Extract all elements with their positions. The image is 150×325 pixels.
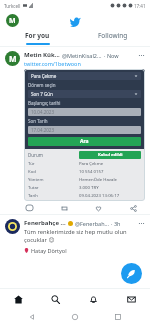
staticText: · Now (104, 52, 119, 59)
button[interactable]: Compose Tweet (121, 263, 142, 284)
staticText: For you (25, 31, 50, 40)
staticText: Başlangıç tarihi (28, 100, 61, 106)
staticText: Metin Kük... (24, 51, 60, 59)
button[interactable]: Back (27, 312, 37, 322)
staticText: M (9, 53, 17, 64)
staticText: Son Tarih (28, 118, 48, 124)
button[interactable]: 10.04.2023 (31, 108, 138, 116)
staticText: 10 554 0157 (79, 168, 141, 174)
button[interactable]: Recents (113, 312, 123, 322)
staticText: 10.04.2023 (31, 109, 55, 115)
staticText: 3.000 TRY (79, 184, 141, 190)
staticText: twitter.com/1betwoon (24, 60, 81, 67)
staticText: Tür (28, 160, 79, 166)
staticText: Hatay Dörtyol (31, 247, 67, 254)
staticText: 09.04.2023 13:06:17 (79, 192, 141, 198)
staticText: Yöntem (28, 176, 79, 182)
staticText: Para Çekme (79, 160, 141, 166)
staticText: Kabul edildi (98, 152, 123, 158)
button[interactable]: Metin avatar (5, 51, 20, 66)
button[interactable]: Like (93, 203, 104, 214)
staticText: M (9, 16, 16, 26)
staticText: Tarih (28, 192, 79, 198)
button[interactable]: Messages (112, 289, 150, 309)
button[interactable]: Home (0, 289, 37, 309)
button[interactable]: For you (0, 30, 75, 46)
staticText: Ara (80, 138, 89, 145)
staticText: Para Çekme (31, 73, 57, 79)
button[interactable]: Notifications (74, 289, 112, 309)
button[interactable]: Son 7 Gün (31, 90, 138, 98)
button[interactable]: More (137, 51, 145, 59)
staticText: Tutar (28, 184, 79, 190)
button[interactable]: Twitter (68, 14, 82, 28)
staticText: 17:41 (134, 3, 146, 9)
staticText: Durum (28, 152, 79, 158)
staticText: 17.04.2023 (31, 127, 55, 133)
button[interactable]: Para Çekme (31, 72, 138, 80)
staticText: Dönem seçin (28, 82, 56, 88)
staticText: Turkcell (4, 3, 21, 9)
button[interactable]: Para Çekme (24, 69, 145, 201)
button[interactable]: 17.04.2023 (31, 126, 138, 134)
button[interactable]: Home (70, 312, 80, 322)
staticText: Tüm renklerimizde siz hep mutlu olun çoc… (24, 228, 127, 244)
button[interactable]: Ara (28, 137, 141, 146)
staticText: Son 7 Gün (31, 91, 53, 97)
button[interactable]: Retweet (59, 203, 70, 214)
button[interactable]: Reply (24, 203, 35, 214)
staticText: Fenerbahçe ... (24, 219, 66, 227)
staticText: Following (98, 31, 128, 40)
staticText: @MetinKisal2... (62, 52, 102, 59)
button[interactable]: Fenerbahce avatar (5, 219, 20, 234)
button[interactable]: More (137, 219, 145, 227)
button[interactable]: Profile (6, 14, 19, 27)
button[interactable]: Share (128, 203, 139, 214)
staticText: @Fenerbah... (75, 220, 109, 227)
staticText: Kod (28, 168, 79, 174)
staticText: · 3h (111, 220, 121, 227)
button[interactable]: Following (75, 30, 150, 46)
button[interactable]: Search (37, 289, 74, 309)
staticText: HemenÖde Havale (79, 176, 141, 182)
